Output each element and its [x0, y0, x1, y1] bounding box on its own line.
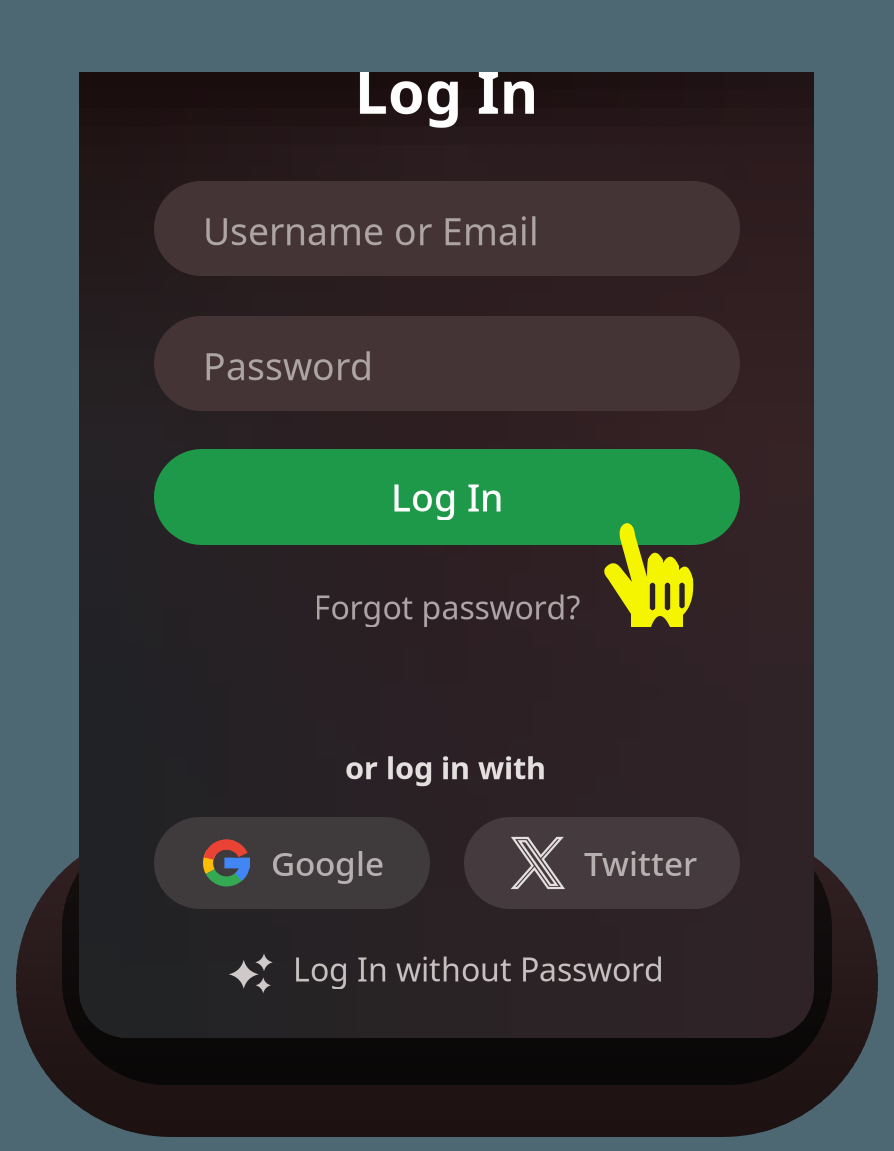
staticText: Log In — [391, 472, 503, 522]
staticText: Google — [271, 841, 384, 885]
button[interactable]: Log In — [154, 449, 740, 545]
staticText: Username or Email — [203, 206, 539, 256]
button[interactable]: Password — [154, 316, 740, 411]
button[interactable]: Log In without Password — [226, 940, 664, 998]
staticText: Password — [203, 341, 373, 391]
button[interactable]: Username or Email — [154, 181, 740, 276]
staticText: Forgot password? — [313, 586, 580, 628]
staticText: or log in with — [345, 747, 546, 788]
button[interactable]: Twitter — [464, 817, 740, 909]
staticText: Log In without Password — [293, 948, 664, 990]
staticText: Log In — [355, 52, 538, 130]
button[interactable]: Google — [154, 817, 430, 909]
button[interactable]: Forgot password? — [154, 578, 740, 636]
staticText: Twitter — [584, 841, 697, 885]
